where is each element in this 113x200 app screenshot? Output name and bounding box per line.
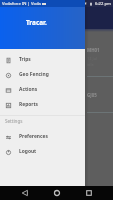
staticText: MH01 [87, 47, 100, 53]
staticText: Reports [19, 101, 39, 108]
staticText: GJ05 [87, 92, 97, 98]
button[interactable]: Logout [0, 144, 85, 159]
staticText: Vodafone IN | Voda [2, 1, 41, 7]
button[interactable]: Recents [82, 186, 96, 200]
button[interactable]: Geo Fencing [0, 67, 85, 82]
staticText: 6:22 pm [95, 1, 111, 7]
staticText: Tracar. [26, 18, 47, 27]
button[interactable]: Reports [0, 97, 85, 112]
staticText: Geo Fencing [19, 71, 49, 78]
staticText: Actions [19, 86, 38, 93]
staticText: Preferences [19, 133, 48, 140]
staticText: Trips [19, 56, 31, 63]
button[interactable]: Actions [0, 82, 85, 97]
staticText: Logout [19, 148, 37, 155]
staticText: Settings [5, 118, 23, 124]
button[interactable]: Back [18, 186, 32, 200]
button[interactable]: Preferences [0, 129, 85, 144]
button[interactable]: Home [50, 186, 64, 200]
button[interactable]: Trips [0, 52, 85, 67]
